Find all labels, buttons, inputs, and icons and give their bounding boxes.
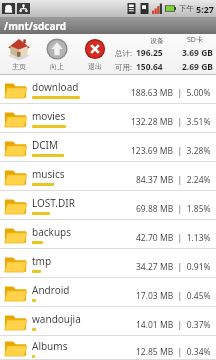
staticText: 14.01 MB | 0.37% <box>136 319 211 331</box>
button[interactable]: wandoujia <box>0 307 216 336</box>
staticText: 5:27 <box>196 3 214 15</box>
staticText: 设备 <box>150 36 164 45</box>
staticText: 2.69 GB <box>182 61 213 73</box>
staticText: 主页 <box>12 62 26 71</box>
button[interactable]: Android <box>0 278 216 307</box>
button[interactable]: DCIM <box>0 133 216 162</box>
staticText: DCIM <box>32 138 59 152</box>
staticText: Android <box>32 283 70 297</box>
staticText: 下午 <box>179 4 194 13</box>
staticText: /mnt/sdcard <box>4 19 66 33</box>
staticText: 退出 <box>88 62 102 71</box>
button[interactable]: Albums <box>0 336 216 360</box>
button[interactable]: tmp <box>0 249 216 278</box>
staticText: Albums <box>32 339 68 353</box>
staticText: 3.69 GB <box>182 47 213 59</box>
staticText: 总计: <box>115 48 133 58</box>
button[interactable]: Exit <box>80 37 110 71</box>
button[interactable]: Home <box>4 37 34 71</box>
staticText: musics <box>32 167 65 181</box>
staticText: tmp <box>32 254 52 268</box>
staticText: 84.37 MB | 2.24% <box>136 174 211 186</box>
staticText: 150.64 MB <box>136 61 177 73</box>
button[interactable]: Up <box>42 37 72 71</box>
staticText: 69.88 MB | 1.85% <box>136 203 211 215</box>
staticText: wandoujia <box>32 312 81 326</box>
staticText: 123.69 MB | 3.28% <box>131 145 211 157</box>
button[interactable]: LOST.DIR <box>0 191 216 220</box>
button[interactable]: /mnt/sdcard <box>0 17 216 34</box>
button[interactable]: musics <box>0 162 216 191</box>
staticText: 188.63 MB | 5.00% <box>131 87 211 99</box>
button[interactable]: movies <box>0 104 216 133</box>
staticText: 196.25 MB <box>136 47 177 59</box>
staticText: 132.28 MB | 3.51% <box>131 116 211 128</box>
staticText: 可用: <box>115 62 133 72</box>
staticText: SD卡 <box>187 35 203 45</box>
staticText: LOST.DIR <box>32 196 75 210</box>
staticText: 42.70 MB | 1.13% <box>136 232 211 244</box>
staticText: 12.85 MB | 0.34% <box>136 346 211 358</box>
staticText: download <box>32 80 79 94</box>
staticText: 向上 <box>50 62 64 71</box>
button[interactable]: download <box>0 75 216 104</box>
staticText: 34.27 MB | 0.91% <box>136 261 211 273</box>
button[interactable]: backups <box>0 220 216 249</box>
staticText: movies <box>32 109 66 123</box>
staticText: 17.03 MB | 0.45% <box>136 290 211 302</box>
staticText: backups <box>32 225 72 239</box>
